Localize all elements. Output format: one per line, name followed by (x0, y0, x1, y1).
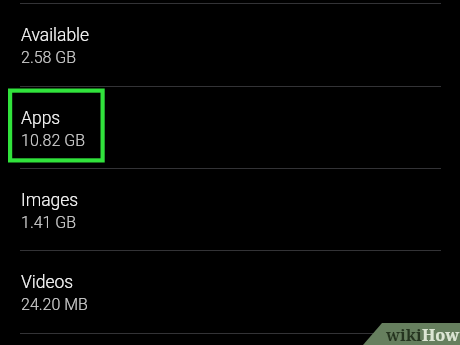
button[interactable]: Videos (0, 250, 460, 333)
other: Apps row highlighted (8, 88, 106, 163)
staticText: Videos (21, 272, 74, 293)
staticText: 24.20 MB (21, 295, 88, 314)
staticText: Available (21, 25, 90, 46)
button[interactable]: Images (0, 168, 460, 250)
staticText: How (422, 324, 460, 345)
button[interactable]: Available (0, 3, 460, 86)
staticText: 1.41 GB (21, 213, 77, 232)
staticText: wiki (386, 324, 422, 345)
staticText: 2.58 GB (21, 48, 77, 67)
staticText: 10.82 GB (21, 131, 85, 150)
button[interactable]: Apps (0, 86, 460, 168)
staticText: Apps (21, 108, 61, 129)
staticText: Images (21, 190, 79, 211)
